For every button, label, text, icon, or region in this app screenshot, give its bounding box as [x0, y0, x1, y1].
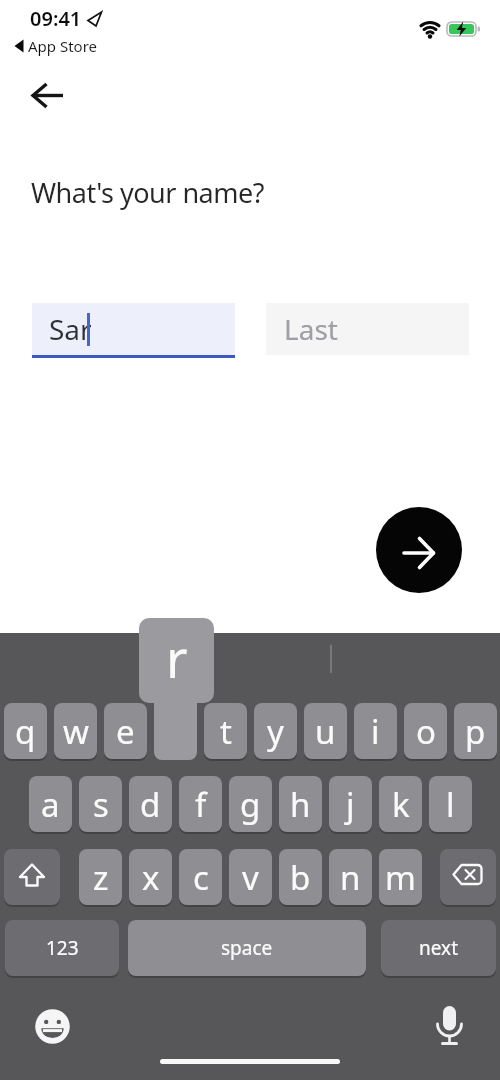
staticText: y: [267, 709, 284, 754]
staticText: l: [446, 782, 455, 827]
button[interactable]: v: [229, 849, 272, 905]
button[interactable]: l: [429, 776, 472, 832]
button[interactable]: 123: [5, 920, 119, 976]
button[interactable]: z: [79, 849, 122, 905]
staticText: q: [15, 709, 36, 754]
button[interactable]: a: [29, 776, 72, 832]
staticText: h: [290, 782, 311, 827]
staticText: x: [142, 855, 160, 900]
staticText: f: [195, 782, 207, 827]
button[interactable]: d: [129, 776, 172, 832]
button[interactable]: u: [304, 703, 347, 759]
staticText: z: [93, 855, 109, 900]
button[interactable]: c: [179, 849, 222, 905]
button[interactable]: k: [379, 776, 422, 832]
button[interactable]: q: [4, 703, 47, 759]
button[interactable]: next: [381, 920, 496, 976]
button[interactable]: y: [254, 703, 297, 759]
button[interactable]: g: [229, 776, 272, 832]
button[interactable]: h: [279, 776, 322, 832]
staticText: w: [63, 709, 89, 754]
staticText: n: [340, 855, 361, 900]
button[interactable]: f: [179, 776, 222, 832]
staticText: j: [346, 782, 355, 827]
button[interactable]: [434, 1000, 466, 1048]
staticText: c: [193, 855, 209, 900]
staticText: g: [240, 782, 261, 827]
staticText: p: [465, 709, 486, 754]
button[interactable]: e: [104, 703, 147, 759]
staticText: s: [93, 782, 109, 827]
button[interactable]: i: [354, 703, 397, 759]
button[interactable]: m: [379, 849, 422, 905]
staticText: e: [116, 709, 135, 754]
button[interactable]: x: [129, 849, 172, 905]
staticText: b: [290, 855, 311, 900]
button[interactable]: [22, 74, 74, 118]
staticText: Sar: [49, 310, 92, 348]
button[interactable]: b: [279, 849, 322, 905]
staticText: k: [392, 782, 410, 827]
staticText: 09:41: [30, 5, 82, 32]
button[interactable]: [440, 849, 496, 905]
button[interactable]: n: [329, 849, 372, 905]
staticText: m: [385, 855, 416, 900]
staticText: App Store: [28, 36, 98, 56]
button[interactable]: s: [79, 776, 122, 832]
staticText: o: [416, 709, 436, 754]
staticText: t: [220, 709, 232, 754]
staticText: a: [41, 782, 60, 827]
button[interactable]: [376, 507, 462, 593]
staticText: space: [221, 935, 273, 961]
button[interactable]: Sar: [32, 303, 235, 355]
staticText: i: [371, 709, 380, 754]
staticText: 123: [46, 935, 79, 961]
button[interactable]: t: [204, 703, 247, 759]
button[interactable]: p: [454, 703, 497, 759]
button[interactable]: [4, 849, 60, 905]
button[interactable]: j: [329, 776, 372, 832]
staticText: r: [166, 622, 188, 693]
button[interactable]: space: [128, 920, 366, 976]
staticText: Last: [284, 310, 338, 348]
staticText: v: [242, 855, 259, 900]
button[interactable]: Last: [266, 303, 469, 355]
button[interactable]: [33, 1007, 72, 1046]
staticText: d: [140, 782, 161, 827]
staticText: u: [315, 709, 336, 754]
staticText: What's your name?: [31, 174, 264, 211]
button[interactable]: o: [404, 703, 447, 759]
button[interactable]: w: [54, 703, 97, 759]
staticText: next: [419, 935, 458, 961]
